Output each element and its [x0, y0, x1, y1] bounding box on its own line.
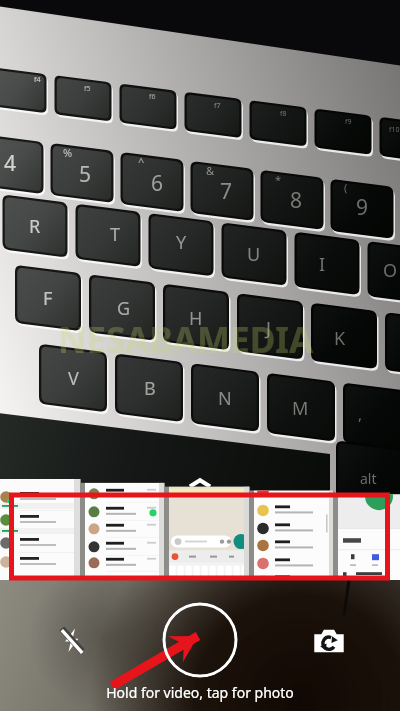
- staticText: %: [63, 145, 73, 160]
- staticText: alt: [360, 469, 377, 488]
- staticText: O: [383, 258, 398, 283]
- staticText: 7: [220, 177, 233, 205]
- staticText: G: [117, 296, 131, 321]
- staticText: (: [344, 180, 348, 195]
- staticText: R: [29, 214, 41, 239]
- staticText: ^: [138, 154, 145, 169]
- staticText: f8: [280, 109, 287, 119]
- staticText: B: [144, 376, 156, 401]
- staticText: NESABAMEDIA: [58, 316, 314, 364]
- staticText: N: [218, 386, 232, 411]
- staticText: f7: [214, 101, 221, 111]
- staticText: Hold for video, tap for photo: [0, 683, 400, 702]
- staticText: 8: [290, 186, 303, 214]
- staticText: M: [292, 396, 309, 421]
- button[interactable]: Recent photo 3: [169, 486, 249, 580]
- staticText: ,: [358, 404, 363, 424]
- staticText: f6: [149, 92, 156, 102]
- staticText: V: [68, 366, 79, 391]
- staticText: 9: [356, 193, 369, 221]
- staticText: 5: [79, 160, 92, 188]
- button[interactable]: Recent photo 5: [338, 486, 400, 580]
- staticText: 4: [4, 149, 17, 177]
- button[interactable]: Switch camera: [313, 626, 345, 658]
- staticText: *: [275, 172, 282, 187]
- staticText: Y: [176, 230, 187, 255]
- button[interactable]: Show gallery: [182, 468, 218, 490]
- staticText: &: [206, 163, 215, 178]
- button[interactable]: Shutter: [162, 602, 238, 678]
- button[interactable]: Flash off: [57, 625, 87, 655]
- button[interactable]: Recent photo 1: [0, 486, 80, 580]
- staticText: f9: [345, 117, 352, 127]
- button[interactable]: Recent photo 4: [254, 486, 333, 580]
- button[interactable]: Recent photo 2: [85, 486, 164, 580]
- staticText: U: [247, 242, 261, 267]
- staticText: H: [189, 306, 203, 331]
- staticText: J: [266, 316, 271, 341]
- staticText: T: [110, 222, 121, 247]
- staticText: f5: [84, 84, 91, 94]
- staticText: F: [43, 286, 53, 311]
- staticText: 6: [151, 169, 164, 197]
- staticText: f10: [389, 125, 400, 135]
- staticText: K: [334, 326, 346, 351]
- staticText: f4: [34, 75, 41, 85]
- staticText: I: [319, 252, 326, 277]
